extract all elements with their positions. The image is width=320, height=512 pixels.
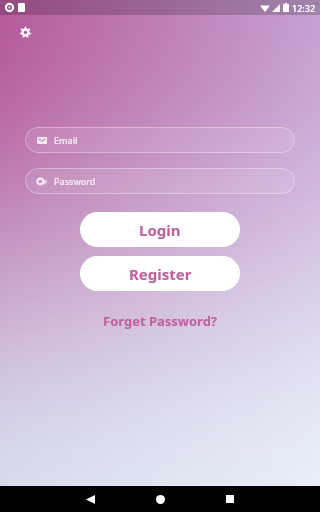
button[interactable]: Email xyxy=(25,127,295,153)
staticText: Forget Password? xyxy=(103,312,218,330)
button[interactable]: Login xyxy=(80,212,240,247)
staticText: Password xyxy=(54,175,96,187)
button[interactable]: Back xyxy=(55,486,125,512)
button[interactable]: Home xyxy=(125,486,195,512)
button[interactable]: Recents xyxy=(195,486,265,512)
staticText: 12:32 xyxy=(292,2,316,14)
staticText: Login xyxy=(139,220,181,240)
button[interactable]: Register xyxy=(80,256,240,291)
staticText: Register xyxy=(129,264,192,284)
button[interactable]: Settings xyxy=(13,20,37,44)
button[interactable]: Password xyxy=(25,168,295,194)
staticText: Email xyxy=(54,134,78,146)
button[interactable]: Forget Password? xyxy=(93,308,228,334)
